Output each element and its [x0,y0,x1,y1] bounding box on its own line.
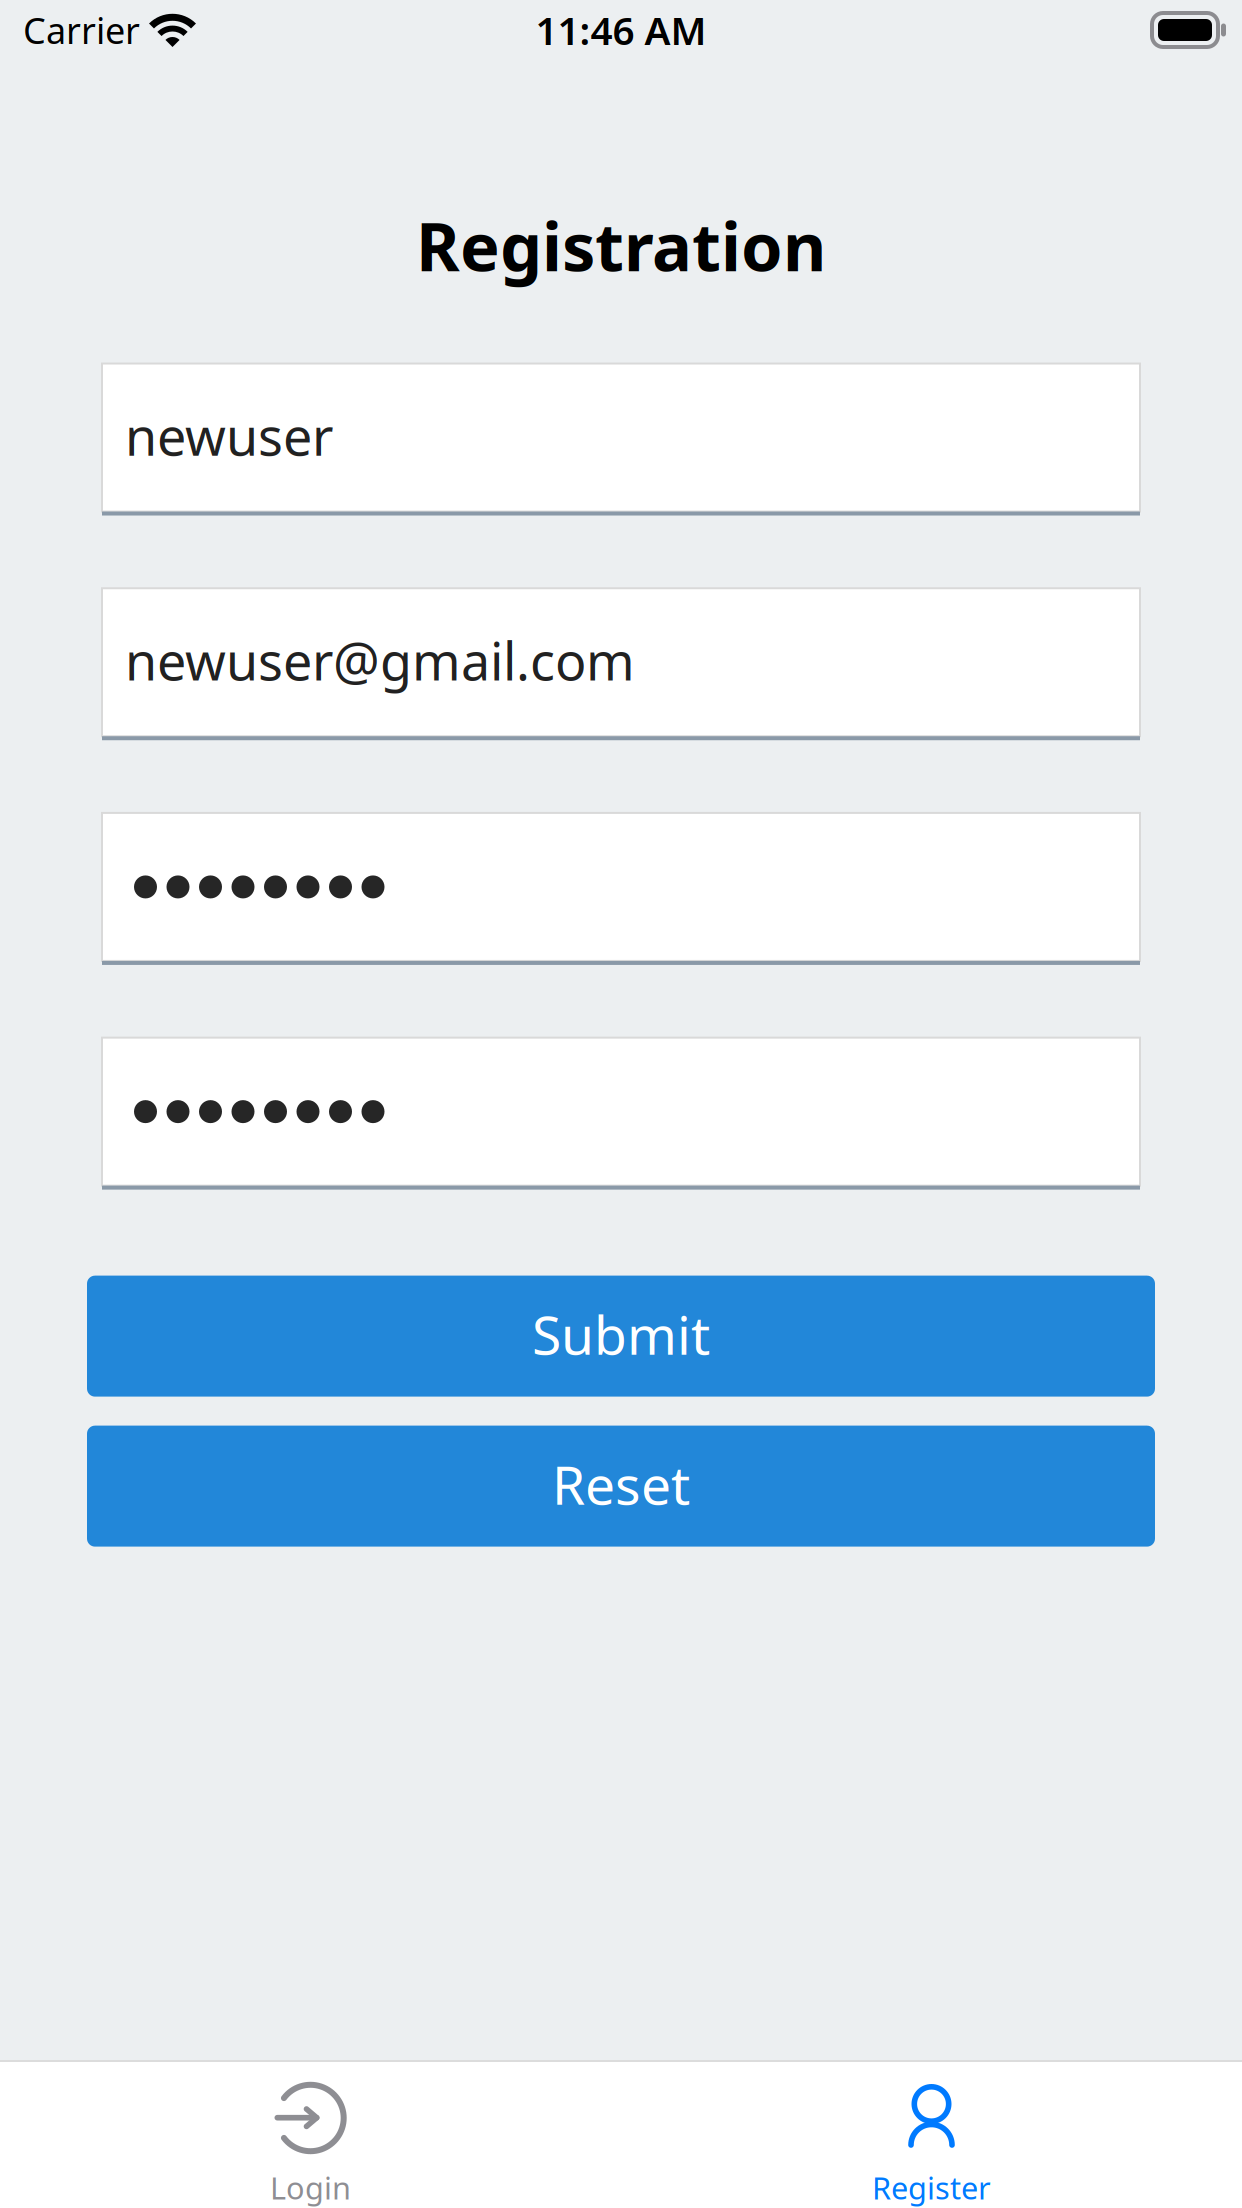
staticText: newuser@gmail.com [125,626,635,695]
staticText: 11:46 AM [535,4,706,56]
staticText: Submit [532,1299,710,1369]
button[interactable]: Submit [87,1276,1155,1397]
staticText: Reset [552,1449,690,1519]
staticText: Register [872,2167,991,2208]
button[interactable]: Login [0,2062,621,2208]
button[interactable]: Reset [87,1426,1155,1547]
button[interactable]: Register [621,2062,1242,2208]
staticText: Carrier [23,6,140,54]
staticText: Login [270,2167,351,2208]
staticText: Registration [416,201,826,289]
staticText: newuser [125,401,333,470]
